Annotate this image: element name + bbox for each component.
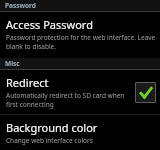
button[interactable]: Access Password — [0, 12, 160, 56]
button[interactable]: Redirect — [0, 70, 160, 114]
staticText: Password — [5, 1, 36, 10]
staticText: Access Password — [6, 17, 93, 32]
staticText: Change web interface colors — [6, 136, 93, 145]
staticText: Misc — [5, 59, 20, 68]
staticText: Background color — [6, 120, 98, 135]
button[interactable]: Redirect — [135, 82, 156, 103]
staticText: Password protection for the web interfac… — [6, 33, 156, 51]
staticText: Redirect — [6, 75, 49, 90]
button[interactable]: Background color — [0, 115, 160, 150]
staticText: Automatically redirect to SD card when f… — [6, 91, 131, 109]
